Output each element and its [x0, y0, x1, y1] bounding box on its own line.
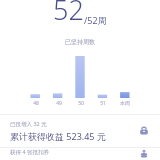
staticText: 累计获得收益 523.45 元	[10, 130, 106, 142]
button[interactable]: 累计获得收益	[136, 123, 152, 139]
button[interactable]: 已投增入 32 元	[0, 115, 160, 147]
staticText: 50	[78, 100, 84, 107]
staticText: 49	[56, 100, 62, 107]
button[interactable]: 累计提现	[136, 148, 152, 160]
staticText: 已投增入 32 元	[10, 120, 47, 128]
staticText: 获得 4 张抵扣券	[10, 148, 50, 156]
staticText: /52周	[84, 14, 107, 26]
staticText: 51	[100, 100, 106, 107]
staticText: 52	[53, 0, 84, 28]
staticText: 48	[33, 100, 39, 107]
staticText: 已坚持周数	[65, 38, 95, 46]
button[interactable]: 获得 4 张抵扣券	[0, 148, 160, 160]
staticText: 本周	[120, 100, 130, 106]
